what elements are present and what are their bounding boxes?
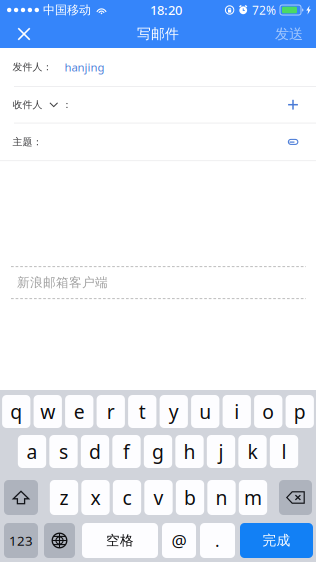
staticText: d (89, 438, 101, 465)
button[interactable]: n (207, 480, 236, 515)
button[interactable]: Close (0, 20, 48, 48)
staticText: a (26, 438, 37, 465)
button[interactable]: 发件人： (0, 48, 316, 86)
staticText: p (294, 398, 306, 425)
button[interactable]: . (200, 523, 235, 558)
staticText: 写邮件 (137, 25, 179, 43)
button[interactable]: Shift (4, 480, 38, 515)
staticText: hanjing (64, 59, 104, 75)
button[interactable]: z (50, 480, 78, 515)
button[interactable]: s (49, 435, 78, 468)
staticText: x (90, 484, 100, 511)
button[interactable]: y (160, 395, 188, 428)
button[interactable]: v (144, 480, 173, 515)
button[interactable]: t (128, 395, 156, 428)
staticText: e (74, 398, 85, 425)
staticText: . (215, 529, 220, 552)
staticText: y (169, 398, 179, 425)
button[interactable]: e (65, 395, 93, 428)
staticText: v (153, 484, 163, 511)
staticText: n (215, 484, 227, 511)
button[interactable]: b (176, 480, 204, 515)
button[interactable]: f (112, 435, 141, 468)
staticText: 中国移动 (43, 2, 91, 17)
button[interactable]: k (238, 435, 267, 468)
staticText: o (262, 398, 274, 425)
staticText: 完成 (262, 532, 290, 549)
staticText: 空格 (106, 532, 134, 549)
staticText: g (152, 438, 164, 465)
staticText: 18:20 (150, 1, 182, 19)
staticText: u (199, 398, 211, 425)
staticText: j (218, 438, 223, 465)
staticText: 123 (9, 531, 33, 549)
staticText: 新浪邮箱客户端 (17, 275, 108, 291)
button[interactable]: x (81, 480, 110, 515)
staticText: l (281, 438, 286, 465)
staticText: i (234, 398, 239, 425)
button[interactable]: g (144, 435, 172, 468)
button[interactable]: 主题： (0, 123, 316, 160)
button[interactable]: @ (162, 523, 196, 558)
button[interactable]: d (81, 435, 109, 468)
button[interactable]: o (254, 395, 282, 428)
button[interactable]: 完成 (240, 523, 313, 558)
button[interactable]: m (239, 480, 267, 515)
staticText: 收件人 (12, 98, 42, 111)
button[interactable]: i (223, 395, 251, 428)
staticText: 发送 (275, 25, 303, 43)
button[interactable]: 收件人 (0, 87, 316, 123)
staticText: s (59, 438, 68, 465)
staticText: m (244, 484, 262, 511)
button[interactable]: 空格 (82, 523, 158, 558)
button[interactable]: u (191, 395, 219, 428)
staticText: ： (62, 98, 72, 111)
staticText: z (59, 484, 68, 511)
staticText: @ (171, 529, 186, 552)
staticText: q (10, 398, 22, 425)
staticText: w (40, 398, 55, 425)
button[interactable]: 123 (4, 523, 38, 558)
button[interactable]: h (175, 435, 204, 468)
button[interactable]: l (270, 435, 298, 468)
button[interactable]: p (286, 395, 314, 428)
button[interactable]: j (207, 435, 235, 468)
button[interactable]: 发送 (262, 20, 316, 48)
staticText: 发件人： (12, 61, 52, 73)
staticText: f (123, 438, 130, 465)
staticText: 主题： (12, 136, 42, 148)
button[interactable]: Delete (279, 480, 312, 515)
button[interactable]: r (97, 395, 125, 428)
button[interactable]: c (113, 480, 141, 515)
staticText: k (247, 438, 257, 465)
staticText: b (184, 484, 196, 511)
button[interactable]: q (2, 395, 30, 428)
staticText: c (122, 484, 131, 511)
staticText: t (139, 398, 146, 425)
staticText: 72% (252, 2, 276, 18)
button[interactable]: Next keyboard (44, 523, 75, 558)
button[interactable]: a (18, 435, 46, 468)
staticText: h (183, 438, 195, 465)
button[interactable]: w (34, 395, 62, 428)
staticText: r (107, 398, 115, 425)
